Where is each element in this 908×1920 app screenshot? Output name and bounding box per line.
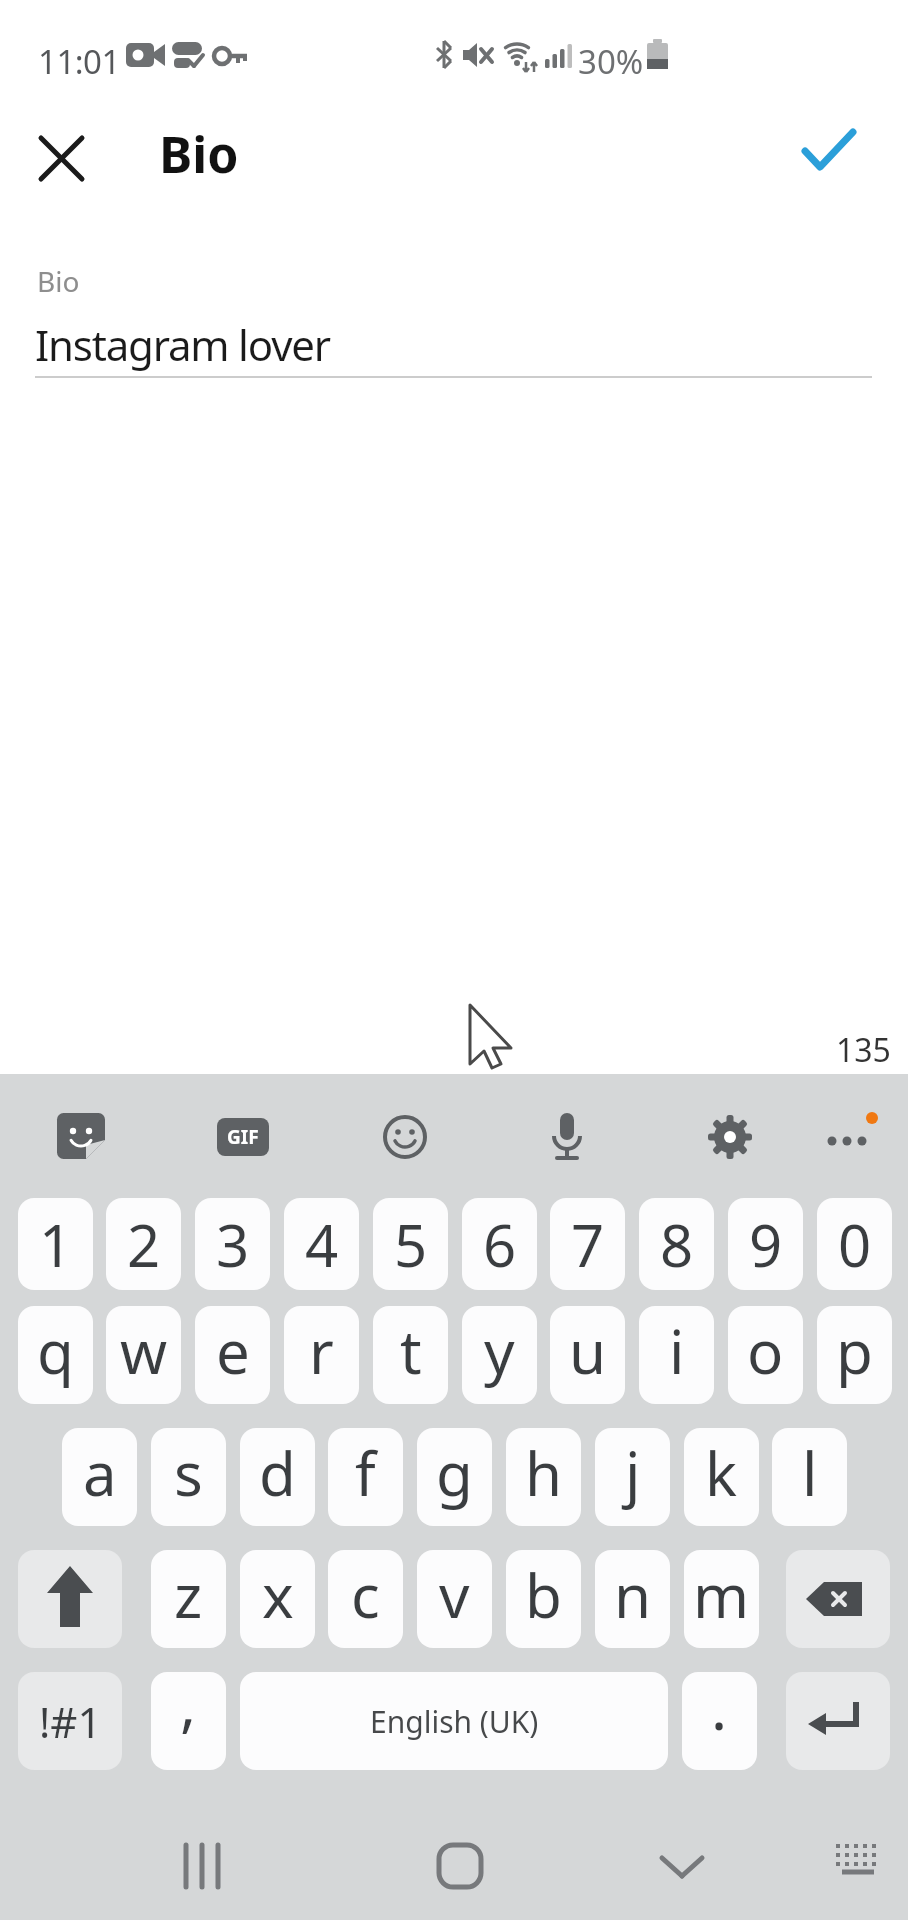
button[interactable] (786, 1672, 890, 1770)
staticText: 7 (571, 1205, 605, 1284)
staticText: e (216, 1310, 250, 1392)
staticText: f (355, 1432, 376, 1514)
button[interactable]: !#1 (18, 1672, 122, 1770)
staticText: n (614, 1554, 652, 1636)
button[interactable] (176, 1838, 232, 1894)
button[interactable] (28, 125, 94, 191)
staticText: l (802, 1432, 818, 1514)
staticText: y (484, 1310, 515, 1392)
staticText: , (180, 1672, 197, 1744)
staticText: s (174, 1432, 203, 1514)
staticText: m (693, 1554, 750, 1636)
button[interactable]: n (595, 1550, 670, 1648)
button[interactable]: z (151, 1550, 226, 1648)
staticText: English (UK) (370, 1701, 539, 1742)
staticText: g (436, 1432, 473, 1514)
staticText: t (400, 1310, 422, 1392)
button[interactable]: u (550, 1306, 625, 1404)
button[interactable]: 9 (728, 1198, 803, 1290)
button[interactable]: v (417, 1550, 492, 1648)
button[interactable] (790, 115, 870, 195)
button[interactable] (432, 1838, 488, 1894)
button[interactable]: w (106, 1306, 181, 1404)
button[interactable]: 8 (639, 1198, 714, 1290)
staticText: 2 (127, 1205, 161, 1284)
staticText: 3 (216, 1205, 250, 1284)
button[interactable]: k (684, 1428, 759, 1526)
button[interactable]: 4 (284, 1198, 359, 1290)
staticText: 1 (39, 1205, 73, 1284)
button[interactable]: English (UK) (240, 1672, 668, 1770)
staticText: b (525, 1554, 562, 1636)
button[interactable] (655, 1838, 711, 1894)
button[interactable]: , (151, 1672, 226, 1770)
staticText: 0 (838, 1205, 872, 1284)
button[interactable] (18, 1550, 122, 1648)
button[interactable] (706, 1113, 754, 1161)
button[interactable]: a (62, 1428, 137, 1526)
staticText: GIF (227, 1124, 259, 1150)
staticText: c (351, 1554, 380, 1636)
button[interactable]: h (506, 1428, 581, 1526)
staticText: 4 (305, 1205, 339, 1284)
button[interactable]: i (639, 1306, 714, 1404)
button[interactable]: y (462, 1306, 537, 1404)
button[interactable]: . (682, 1672, 757, 1770)
staticText: Bio (159, 120, 239, 188)
staticText: i (669, 1310, 685, 1392)
button[interactable]: 2 (106, 1198, 181, 1290)
button[interactable]: 7 (550, 1198, 625, 1290)
button[interactable]: 3 (195, 1198, 270, 1290)
button[interactable]: l (772, 1428, 847, 1526)
button[interactable]: s (151, 1428, 226, 1526)
button[interactable]: f (328, 1428, 403, 1526)
button[interactable]: d (240, 1428, 315, 1526)
staticText: Bio (37, 262, 80, 300)
staticText: Instagram lover (35, 316, 330, 373)
staticText: x (262, 1554, 294, 1636)
button[interactable]: b (506, 1550, 581, 1648)
button[interactable] (786, 1550, 890, 1648)
button[interactable]: c (328, 1550, 403, 1648)
staticText: h (525, 1432, 563, 1514)
button[interactable]: p (817, 1306, 892, 1404)
staticText: u (569, 1310, 607, 1392)
button[interactable] (830, 1840, 886, 1888)
staticText: 6 (483, 1205, 517, 1284)
button[interactable]: 1 (18, 1198, 93, 1290)
staticText: 135 (836, 1028, 891, 1072)
button[interactable]: 6 (462, 1198, 537, 1290)
staticText: q (37, 1310, 74, 1392)
button[interactable]: q (18, 1306, 93, 1404)
staticText: w (120, 1310, 168, 1392)
button[interactable]: o (728, 1306, 803, 1404)
staticText: k (705, 1432, 738, 1514)
staticText: . (711, 1672, 728, 1748)
button[interactable] (545, 1111, 589, 1163)
button[interactable]: GIF (217, 1118, 269, 1156)
staticText: o (747, 1310, 784, 1392)
button[interactable]: x (240, 1550, 315, 1648)
button[interactable]: g (417, 1428, 492, 1526)
button[interactable]: e (195, 1306, 270, 1404)
staticText: v (439, 1554, 470, 1636)
button[interactable] (820, 1108, 886, 1152)
button[interactable]: 0 (817, 1198, 892, 1290)
button[interactable] (56, 1112, 106, 1162)
button[interactable]: r (284, 1306, 359, 1404)
staticText: 8 (660, 1205, 694, 1284)
staticText: z (174, 1554, 203, 1636)
staticText: 11:01 (38, 39, 120, 84)
button[interactable]: m (684, 1550, 759, 1648)
button[interactable]: t (373, 1306, 448, 1404)
button[interactable]: 5 (373, 1198, 448, 1290)
staticText: d (259, 1432, 296, 1514)
staticText: !#1 (39, 1693, 102, 1750)
button[interactable]: j (595, 1428, 670, 1526)
staticText: 5 (394, 1205, 428, 1284)
button[interactable] (382, 1114, 428, 1160)
staticText: a (83, 1432, 117, 1514)
staticText: 30% (578, 39, 644, 84)
staticText: r (309, 1310, 334, 1392)
staticText: p (836, 1310, 873, 1392)
